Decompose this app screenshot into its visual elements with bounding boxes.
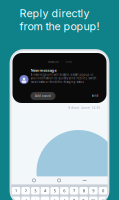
staticText: 3 <box>34 188 36 193</box>
button[interactable]: ( <box>50 196 59 200</box>
button[interactable]: 9 <box>89 187 98 194</box>
staticText: ; <box>44 198 45 200</box>
staticText: A new recipient will disable a small pop… <box>30 73 96 84</box>
staticText: Add a word <box>35 94 51 98</box>
button[interactable]: ; <box>41 196 49 200</box>
staticText: 2 <box>25 188 27 193</box>
button[interactable]: $ <box>70 196 78 200</box>
button[interactable]: 0 <box>99 187 107 194</box>
staticText: : <box>35 198 36 200</box>
staticText: 5 <box>54 188 56 193</box>
staticText: / <box>25 198 26 200</box>
button[interactable]: ) <box>60 196 69 200</box>
staticText: " <box>102 198 104 200</box>
staticText: ) <box>64 198 65 200</box>
button[interactable]: 6 <box>60 187 69 194</box>
staticText: MESSAGES · now <box>47 60 71 63</box>
button[interactable]: 5 <box>50 187 59 194</box>
staticText: New message <box>30 67 56 73</box>
staticText: Reply directly from the popup! <box>19 7 99 33</box>
button[interactable]: 7 <box>70 187 78 194</box>
staticText: 4 <box>44 188 46 193</box>
staticText: 9 <box>92 188 94 193</box>
staticText: 1 <box>15 188 17 193</box>
button[interactable]: 4 <box>41 187 49 194</box>
staticText: ( <box>54 198 55 200</box>
button[interactable]: " <box>99 196 107 200</box>
button[interactable]: / <box>21 196 30 200</box>
staticText: 0 <box>102 188 104 193</box>
button[interactable]: Emoji <box>32 179 36 182</box>
button[interactable]: & <box>79 196 88 200</box>
button[interactable]: 8 <box>79 187 88 194</box>
staticText: @ <box>91 198 95 200</box>
button[interactable]: 1 <box>12 187 20 194</box>
staticText: Hi there Lorem 14:36 <box>67 106 100 110</box>
staticText: Send <box>91 94 98 97</box>
staticText: 7 <box>73 188 75 193</box>
staticText: & <box>82 198 85 200</box>
staticText: 8 <box>83 188 85 193</box>
button[interactable]: 2 <box>21 187 30 194</box>
button[interactable]: - <box>12 196 20 200</box>
button[interactable]: : <box>31 196 40 200</box>
staticText: $ <box>73 198 75 200</box>
button[interactable]: 3 <box>31 187 40 194</box>
button[interactable]: Sticker <box>57 179 61 182</box>
staticText: 6 <box>63 188 65 193</box>
button[interactable]: @ <box>89 196 98 200</box>
button[interactable]: MESSAGES · now <box>12 53 106 103</box>
